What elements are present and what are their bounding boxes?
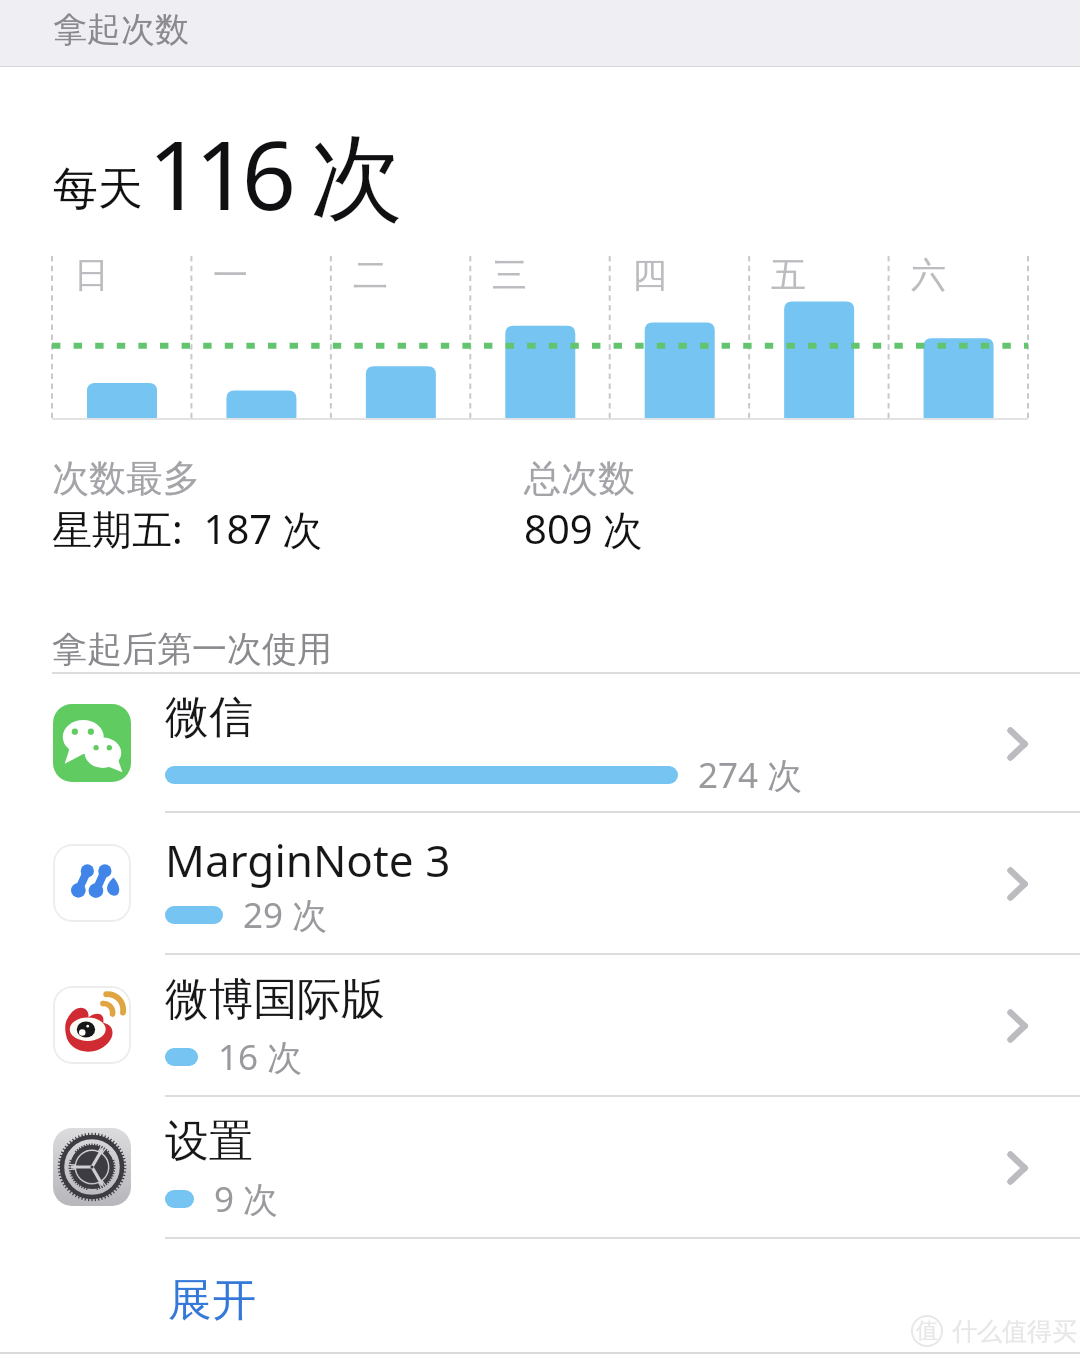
staticText: 六: [911, 253, 946, 297]
staticText: 微博国际版: [165, 972, 385, 1027]
button[interactable]: MarginNote 3: [0, 813, 1080, 955]
other: Open 设置 details: [990, 1141, 1044, 1195]
staticText: 16 次: [218, 1033, 303, 1081]
staticText: 五: [771, 253, 806, 297]
staticText: 二: [353, 253, 388, 297]
other: Open 微信 details: [990, 717, 1044, 771]
staticText: 拿起次数: [53, 8, 189, 51]
other: Open 微博国际版 details: [990, 999, 1044, 1053]
staticText: 值: [916, 1317, 938, 1345]
staticText: 拿起后第一次使用: [52, 627, 332, 671]
staticText: 809 次: [524, 501, 644, 556]
staticText: 什么值得买: [952, 1316, 1077, 1347]
button[interactable]: 展开: [0, 1240, 1080, 1350]
staticText: 次数最多: [52, 455, 200, 502]
staticText: 展开: [168, 1273, 256, 1328]
button[interactable]: 微信: [0, 673, 1080, 813]
staticText: 9 次: [214, 1175, 279, 1223]
staticText: 次: [310, 120, 403, 237]
staticText: 日: [74, 253, 109, 297]
other: Open MarginNote 3 details: [990, 857, 1044, 911]
staticText: 29 次: [243, 891, 328, 939]
staticText: 一: [213, 253, 248, 297]
staticText: 星期五: 187 次: [52, 501, 323, 556]
staticText: 116: [148, 108, 289, 237]
staticText: 274 次: [698, 751, 803, 799]
button[interactable]: 设置: [0, 1097, 1080, 1239]
staticText: 设置: [165, 1114, 253, 1169]
staticText: 每天: [53, 161, 143, 218]
staticText: MarginNote 3: [165, 830, 451, 890]
staticText: 三: [492, 253, 527, 297]
staticText: 总次数: [524, 455, 635, 502]
staticText: 四: [632, 253, 667, 297]
button[interactable]: 微博国际版: [0, 955, 1080, 1097]
staticText: 微信: [165, 690, 253, 745]
